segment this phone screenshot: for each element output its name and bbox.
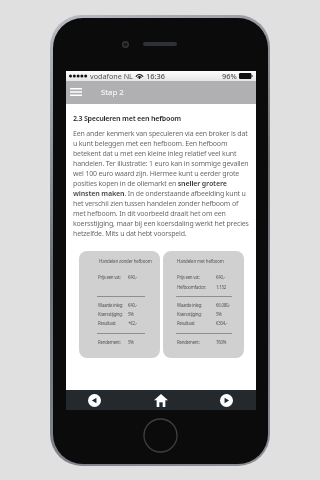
button[interactable]: Open navigation menu xyxy=(66,81,90,104)
staticText: €40,- xyxy=(128,302,137,308)
staticText: Hefboomfactor: xyxy=(177,284,207,290)
staticText: Prijs een vat: xyxy=(98,274,121,280)
staticText: 760% xyxy=(216,339,227,345)
staticText: Rendement: xyxy=(177,339,200,345)
staticText: 2.3 Speculeren met een hefboom xyxy=(73,113,181,123)
staticText: 5% xyxy=(128,339,134,345)
staticText: Rendement: xyxy=(98,339,121,345)
staticText: Resultaat: xyxy=(177,320,195,326)
staticText: Handelen met hefboom xyxy=(177,258,224,264)
staticText: 5% xyxy=(216,311,222,317)
staticText: Waarde inleg: xyxy=(98,302,123,308)
button[interactable]: Handelen zonder hefboom xyxy=(79,251,160,358)
staticText: 1:152 xyxy=(216,284,226,290)
staticText: 16:36 xyxy=(146,71,165,81)
staticText: vodafone NL xyxy=(90,71,133,81)
staticText: €304,- xyxy=(216,320,228,326)
button[interactable]: Previous step xyxy=(64,390,124,410)
staticText: Koersstijging: xyxy=(177,311,202,317)
staticText: €40,- xyxy=(216,274,225,280)
staticText: Prijs een vat: xyxy=(177,274,200,280)
staticText: +€2,- xyxy=(128,320,137,326)
button[interactable]: Handelen met hefboom xyxy=(163,251,244,358)
staticText: 96% xyxy=(222,71,237,81)
staticText: Een ander kenmerk van speculeren via een… xyxy=(73,129,249,239)
staticText: €40,- xyxy=(128,274,137,280)
staticText: €6.080,- xyxy=(216,302,231,308)
staticText: Resultaat: xyxy=(98,320,116,326)
staticText: Stap 2 xyxy=(101,87,124,98)
staticText: Koersstijging: xyxy=(98,311,123,317)
staticText: Handelen zonder hefboom xyxy=(99,258,152,264)
staticText: 5% xyxy=(128,311,134,317)
button[interactable]: Next step xyxy=(196,390,256,410)
button[interactable]: Home xyxy=(131,390,191,410)
staticText: Waarde inleg: xyxy=(177,302,202,308)
